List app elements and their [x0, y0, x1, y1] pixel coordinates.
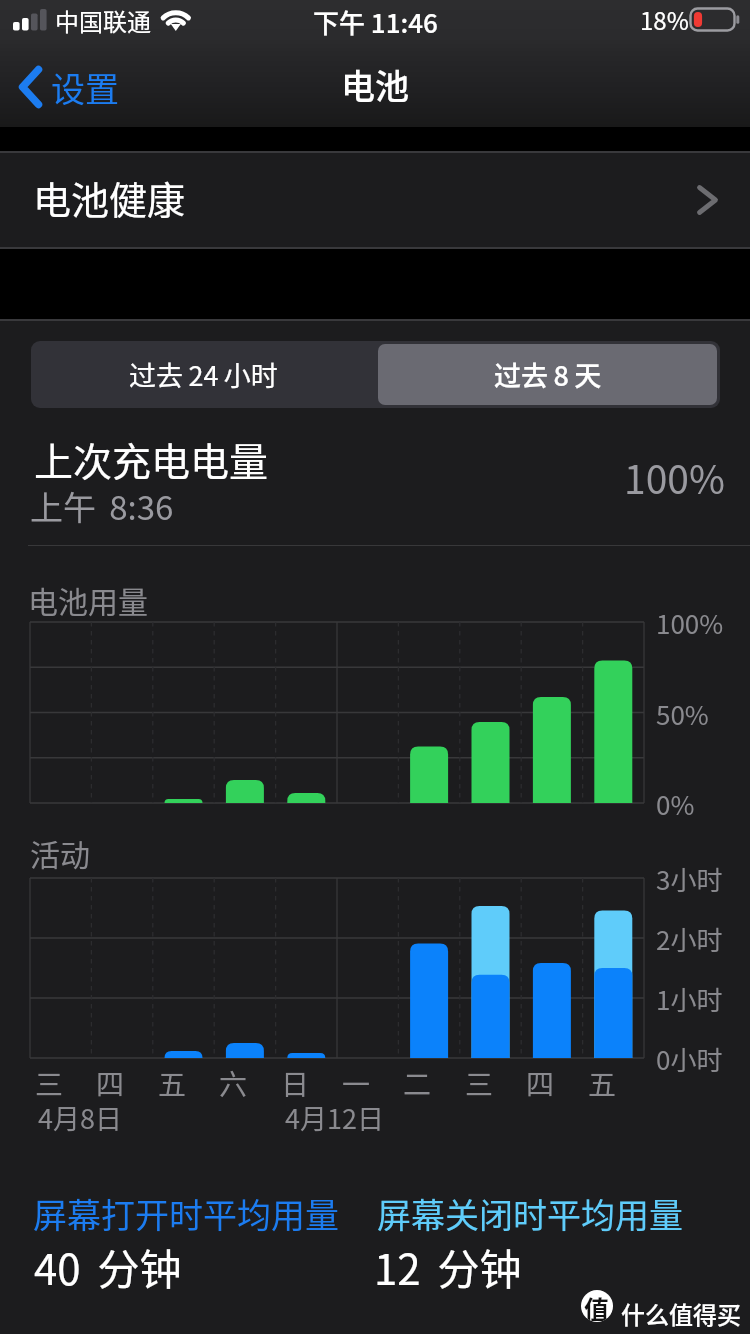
staticText: 六 [219, 1063, 248, 1104]
staticText: 屏幕打开时平均用量 [33, 1189, 339, 1238]
staticText: 1小时 [656, 980, 723, 1018]
staticText: 0小时 [656, 1040, 723, 1078]
staticText: 五 [158, 1063, 187, 1104]
staticText: 12 分钟 [374, 1236, 522, 1297]
staticText: 40 分钟 [34, 1236, 182, 1297]
button[interactable]: 电池健康 [0, 151, 750, 249]
staticText: 100% [624, 449, 725, 505]
staticText: 电池用量 [28, 578, 148, 621]
staticText: 日 [281, 1063, 310, 1104]
staticText: 中国联通 [55, 3, 151, 38]
staticText: 电池健康 [33, 170, 186, 225]
staticText: 屏幕关闭时平均用量 [377, 1189, 683, 1238]
button[interactable]: Back [8, 55, 131, 119]
staticText: 三 [35, 1063, 64, 1104]
staticText: 上午 8:36 [30, 482, 174, 530]
staticText: 0% [656, 785, 695, 823]
button[interactable]: 过去 24 小时 [31, 341, 375, 408]
staticText: 下午 11:46 [313, 3, 438, 41]
staticText: 四 [526, 1063, 555, 1104]
staticText: 18% [640, 2, 689, 37]
other: Back [19, 66, 42, 108]
staticText: 4月8日 [38, 1098, 122, 1137]
staticText: 五 [588, 1063, 617, 1104]
staticText: 值 [584, 1290, 610, 1322]
staticText: 100% [656, 604, 724, 642]
staticText: 一 [342, 1063, 371, 1104]
staticText: 50% [656, 695, 709, 733]
staticText: 3小时 [656, 860, 723, 898]
staticText: 活动 [30, 831, 90, 874]
staticText: 4月12日 [285, 1098, 384, 1137]
staticText: 四 [96, 1063, 125, 1104]
staticText: 三 [465, 1063, 494, 1104]
staticText: 过去 24 小时 [129, 355, 278, 394]
staticText: 2小时 [656, 920, 723, 958]
button[interactable]: 过去 8 天 [378, 344, 717, 405]
staticText: 设置 [51, 63, 119, 112]
staticText: 电池 [341, 60, 409, 109]
staticText: 过去 8 天 [494, 355, 602, 394]
staticText: 上次充电电量 [34, 431, 269, 487]
staticText: 什么值得买 [621, 1296, 741, 1331]
staticText: 二 [403, 1063, 432, 1104]
